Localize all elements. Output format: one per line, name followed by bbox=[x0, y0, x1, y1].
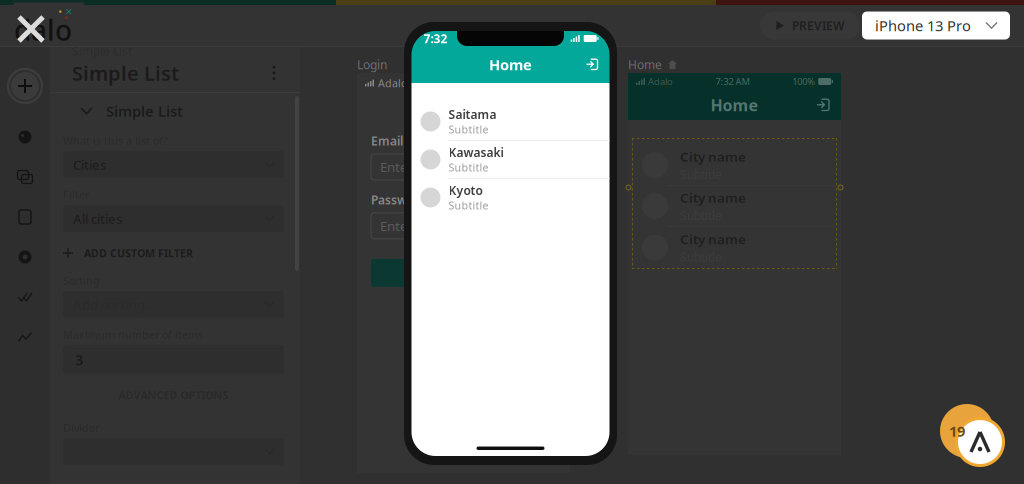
staticText: Home bbox=[710, 94, 758, 116]
button[interactable]: ADD CUSTOM FILTER bbox=[63, 232, 284, 274]
staticText: All cities bbox=[73, 210, 122, 227]
staticText: Simple List bbox=[106, 101, 183, 121]
staticText: Adalo bbox=[378, 76, 407, 90]
staticText: Cities bbox=[73, 156, 106, 173]
button[interactable]: Branding bbox=[0, 117, 50, 157]
staticText: 19 bbox=[949, 421, 985, 441]
button[interactable]: Settings bbox=[0, 237, 50, 277]
button[interactable]: Simple List bbox=[50, 93, 300, 129]
button[interactable]: Kyoto bbox=[411, 179, 609, 216]
button[interactable]: PREVIEW bbox=[760, 11, 860, 39]
button[interactable]: Add bbox=[2, 63, 48, 109]
button[interactable]: Publish bbox=[0, 277, 50, 317]
staticText: Kyoto bbox=[448, 182, 482, 198]
staticText: PREVIEW bbox=[792, 17, 844, 33]
staticText: City name bbox=[680, 148, 746, 165]
button[interactable]: Close preview bbox=[11, 9, 51, 49]
button[interactable]: Screens bbox=[0, 157, 50, 197]
staticText: Login bbox=[357, 56, 387, 72]
button[interactable]: iPhone 13 Pro bbox=[862, 11, 1010, 39]
staticText: Simple List bbox=[72, 43, 132, 59]
staticText: 100% bbox=[792, 75, 815, 88]
button[interactable]: HOME bbox=[50, 12, 300, 37]
staticText: ADVANCED OPTIONS bbox=[118, 388, 228, 402]
staticText: dalo bbox=[14, 11, 72, 49]
staticText: Subtitle bbox=[448, 122, 488, 137]
staticText: Subtitle bbox=[448, 160, 488, 175]
button[interactable]: Saitama bbox=[411, 103, 609, 140]
staticText: Subtitle bbox=[448, 198, 488, 213]
staticText: Simple List bbox=[72, 60, 179, 86]
button[interactable]: Kawasaki bbox=[411, 141, 609, 178]
staticText: Adalo bbox=[648, 75, 673, 88]
staticText: Password bbox=[371, 192, 427, 208]
staticText: City name bbox=[680, 230, 746, 248]
staticText: City name bbox=[680, 189, 746, 206]
staticText: Saitama bbox=[448, 106, 496, 122]
staticText: Enter password bbox=[380, 217, 475, 235]
staticText: Home bbox=[489, 55, 532, 74]
staticText: Enter email bbox=[380, 158, 450, 176]
button[interactable]: Log in bbox=[586, 58, 597, 70]
button[interactable]: More options bbox=[262, 60, 286, 86]
staticText: iPhone 13 Pro bbox=[875, 16, 971, 35]
staticText: Kawasaki bbox=[448, 144, 503, 160]
staticText: 7:32 AM bbox=[716, 75, 750, 88]
staticText: ✕ bbox=[65, 6, 73, 17]
staticText: 7:32 bbox=[423, 30, 447, 46]
staticText: ADD CUSTOM FILTER bbox=[84, 246, 193, 260]
button[interactable]: Database bbox=[0, 197, 50, 237]
staticText: Home bbox=[628, 56, 662, 72]
staticText: 3 bbox=[75, 350, 83, 369]
staticText: Email bbox=[371, 133, 403, 149]
